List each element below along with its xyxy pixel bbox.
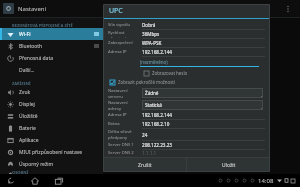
staticText: ZAŘÍZENÍ [12, 81, 31, 86]
button[interactable]: Zrušit [103, 158, 186, 172]
button[interactable]: Přenosná data [0, 52, 103, 64]
button[interactable]: Domů [29, 175, 41, 187]
button[interactable]: Další možnosti [281, 2, 294, 15]
staticText: 208.122.23.23 [142, 142, 172, 148]
staticText: 14:08 [258, 177, 274, 185]
staticText: Zabezpečení [108, 40, 138, 46]
staticText: Zobrazit pokročilé možnosti [118, 79, 176, 85]
staticText: OSOBNÍ [12, 170, 28, 174]
button[interactable]: Zobrazit pokročilé možnosti [110, 78, 176, 86]
button[interactable]: Nastavení serveru proxy [108, 87, 265, 99]
button[interactable]: Úložiště [0, 110, 103, 122]
staticText: Nastavení adresy IP [108, 100, 138, 111]
staticText: Adresa IP [108, 112, 138, 118]
button[interactable]: Wi-Fi [0, 28, 103, 40]
button[interactable]: Hledat [237, 2, 250, 15]
staticText: 192.168.2.10 [142, 121, 170, 127]
staticText: BEZDRÁTOVÁ PŘIPOJENÍ A SÍTĚ [12, 23, 73, 28]
staticText: Server DNS 2 [108, 150, 138, 155]
staticText: Žádné [145, 90, 159, 96]
button[interactable]: (nezměněno) [140, 58, 259, 67]
staticText: 36Mbps [142, 31, 160, 37]
staticText: Adresa IP [108, 49, 138, 55]
staticText: Přenosná data [19, 55, 54, 62]
staticText: Délka síťové předpony [108, 129, 138, 140]
button[interactable]: Úsporný režim [0, 158, 103, 170]
staticText: Server DNS 1 [108, 142, 138, 148]
staticText: MIUI přizpůsobení nastave [19, 149, 83, 156]
staticText: Zrušit [138, 162, 152, 169]
staticText: Bluetooth [19, 43, 43, 50]
button[interactable]: Baterie [0, 122, 103, 134]
button[interactable]: Aplikace [0, 134, 103, 146]
staticText: Nastavení [18, 5, 47, 13]
staticText: 24 [142, 132, 148, 138]
staticText: Uložit [222, 162, 236, 169]
staticText: 192.168.2.144 [142, 112, 172, 118]
staticText: Rychlost připojení [108, 30, 138, 38]
staticText: Aplikace [19, 137, 39, 144]
staticText: Nastavení serveru proxy [108, 88, 138, 99]
button[interactable]: Zobrazovat heslo [144, 69, 188, 77]
button[interactable]: Přidat síť [259, 2, 272, 15]
staticText: 1.1.1.1 [142, 150, 157, 155]
staticText: Statická [145, 102, 162, 108]
button[interactable]: Bluetooth [0, 40, 103, 52]
button[interactable]: Poslední aplikace [53, 175, 65, 187]
button[interactable]: Uložit [187, 158, 270, 172]
staticText: (nezměněno) [140, 59, 168, 65]
button[interactable]: Displej [0, 98, 103, 110]
button[interactable]: MIUI přizpůsobení nastave [0, 146, 103, 158]
button[interactable]: Další... [0, 64, 103, 76]
staticText: UPC [109, 6, 123, 16]
staticText: Wi-Fi [19, 31, 31, 38]
button[interactable]: Nastavení adresy IP [108, 99, 265, 111]
staticText: Úsporný režim [19, 161, 54, 168]
button[interactable]: Zpět [5, 175, 17, 187]
button[interactable]: Nastavení ikona [3, 3, 14, 14]
staticText: Zobrazovat heslo [152, 70, 188, 76]
staticText: Další... [19, 67, 35, 74]
staticText: Síla signálu [108, 22, 138, 28]
staticText: Baterie [19, 125, 36, 132]
staticText: Dobrá [142, 22, 156, 28]
staticText: WPA-PSK [142, 40, 162, 46]
staticText: Brána [108, 121, 138, 127]
staticText: Displej [19, 101, 35, 108]
staticText: 192.168.2.144 [142, 49, 172, 55]
button[interactable]: Zvuk [0, 86, 103, 98]
staticText: Zvuk [19, 89, 31, 96]
staticText: Úložiště [19, 113, 38, 120]
